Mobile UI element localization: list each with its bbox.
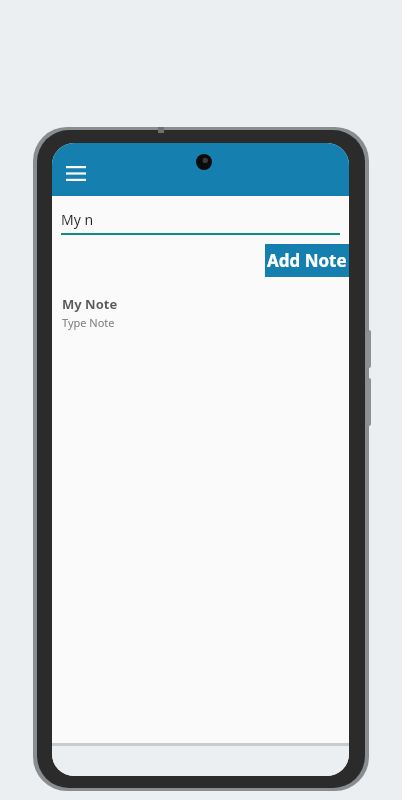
button[interactable]: Open navigation menu	[58, 155, 94, 191]
button[interactable]: My n	[61, 210, 340, 235]
staticText: Add Note	[267, 249, 347, 272]
staticText: Type Note	[62, 315, 115, 330]
button[interactable]: Add Note	[265, 244, 349, 277]
staticText: My Note	[62, 295, 118, 313]
button[interactable]: My Note	[62, 295, 339, 330]
staticText: My n	[61, 210, 94, 229]
